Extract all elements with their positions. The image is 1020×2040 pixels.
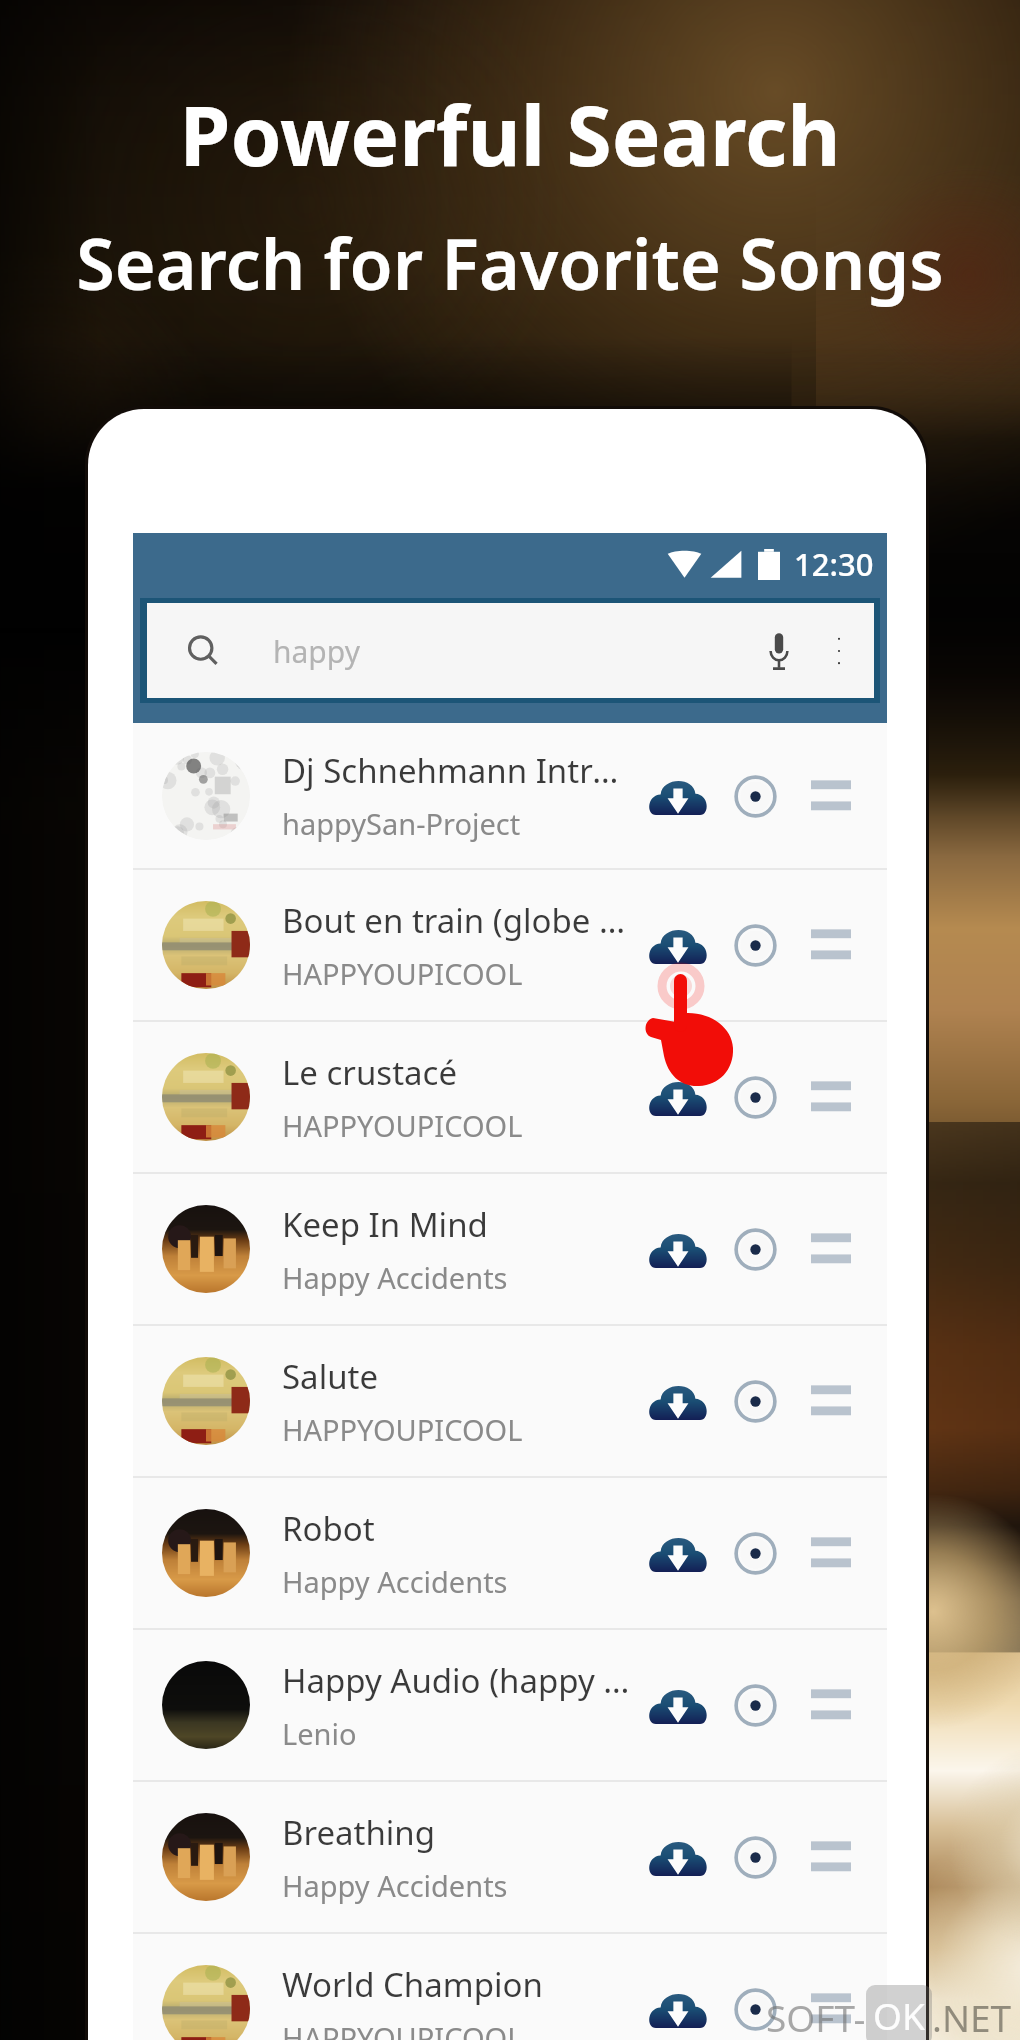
staticText: Robot bbox=[282, 1506, 375, 1551]
button[interactable]: Play bbox=[718, 1820, 792, 1894]
staticText: Dj Schnehmann Intro... bbox=[282, 748, 632, 793]
staticText: Search for Favorite Songs bbox=[76, 215, 944, 310]
staticText: Happy Audio (happy t... bbox=[282, 1658, 632, 1703]
button[interactable]: Happy Audio (happy t... bbox=[133, 1630, 887, 1780]
button[interactable]: Play bbox=[718, 908, 792, 982]
button[interactable]: Download bbox=[641, 1060, 715, 1134]
button[interactable]: Menu bbox=[794, 1212, 868, 1286]
staticText: Lenio bbox=[282, 1714, 357, 1753]
button[interactable]: Play bbox=[718, 759, 792, 833]
staticText: Powerful Search bbox=[179, 78, 841, 190]
staticText: Le crustacé bbox=[282, 1050, 458, 1095]
button[interactable]: Menu bbox=[794, 759, 868, 833]
staticText: Salute bbox=[282, 1354, 379, 1399]
button[interactable]: Le crustacé bbox=[133, 1022, 887, 1172]
button[interactable]: World Champion bbox=[133, 1934, 887, 2040]
button[interactable]: Menu bbox=[794, 1820, 868, 1894]
button[interactable]: Download bbox=[641, 1364, 715, 1438]
staticText: HAPPYOUPICOOL bbox=[282, 2018, 523, 2040]
staticText: Happy Accidents bbox=[282, 1562, 508, 1601]
button[interactable]: Play bbox=[718, 1972, 792, 2040]
staticText: OK bbox=[873, 1990, 925, 2040]
staticText: happySan-Project bbox=[282, 804, 521, 843]
staticText: Breathing bbox=[282, 1810, 436, 1855]
button[interactable]: Menu bbox=[794, 908, 868, 982]
staticText: .NET bbox=[932, 1992, 1012, 2040]
button[interactable]: Play bbox=[718, 1516, 792, 1590]
button[interactable]: Dj Schnehmann Intro... bbox=[133, 723, 887, 868]
button[interactable]: Voice search bbox=[749, 621, 809, 681]
button[interactable]: Play bbox=[718, 1060, 792, 1134]
button[interactable]: SOFT- bbox=[766, 1987, 1012, 2040]
button[interactable]: Download bbox=[641, 1516, 715, 1590]
button[interactable]: Menu bbox=[794, 1364, 868, 1438]
button[interactable]: Menu bbox=[794, 1060, 868, 1134]
button[interactable]: Play bbox=[718, 1212, 792, 1286]
button[interactable]: Keep In Mind bbox=[133, 1174, 887, 1324]
staticText: Happy Accidents bbox=[282, 1258, 508, 1297]
staticText: World Champion bbox=[282, 1962, 543, 2007]
button[interactable]: Download bbox=[641, 1212, 715, 1286]
staticText: Bout en train (globe tr... bbox=[282, 898, 632, 943]
button[interactable]: Menu bbox=[794, 1516, 868, 1590]
button[interactable]: Download bbox=[641, 1668, 715, 1742]
button[interactable]: Play bbox=[718, 1668, 792, 1742]
button[interactable]: Download bbox=[641, 1820, 715, 1894]
button[interactable]: happy bbox=[147, 603, 874, 698]
button[interactable]: Breathing bbox=[133, 1782, 887, 1932]
staticText: Happy Accidents bbox=[282, 1866, 508, 1905]
staticText: HAPPYOUPICOOL bbox=[282, 954, 523, 993]
staticText: HAPPYOUPICOOL bbox=[282, 1106, 523, 1145]
button[interactable]: Robot bbox=[133, 1478, 887, 1628]
button[interactable]: Download bbox=[641, 908, 715, 982]
button[interactable]: Play bbox=[718, 1364, 792, 1438]
button[interactable]: Salute bbox=[133, 1326, 887, 1476]
staticText: Keep In Mind bbox=[282, 1202, 488, 1247]
staticText: SOFT- bbox=[766, 1992, 866, 2040]
button[interactable]: More options bbox=[809, 621, 869, 681]
button[interactable]: Menu bbox=[794, 1972, 868, 2040]
staticText: happy bbox=[273, 631, 360, 672]
button[interactable]: Menu bbox=[794, 1668, 868, 1742]
button[interactable]: Download bbox=[641, 759, 715, 833]
button[interactable]: Bout en train (globe tr... bbox=[133, 870, 887, 1020]
staticText: 12:30 bbox=[794, 543, 874, 585]
button[interactable]: Download bbox=[641, 1972, 715, 2040]
staticText: HAPPYOUPICOOL bbox=[282, 1410, 523, 1449]
